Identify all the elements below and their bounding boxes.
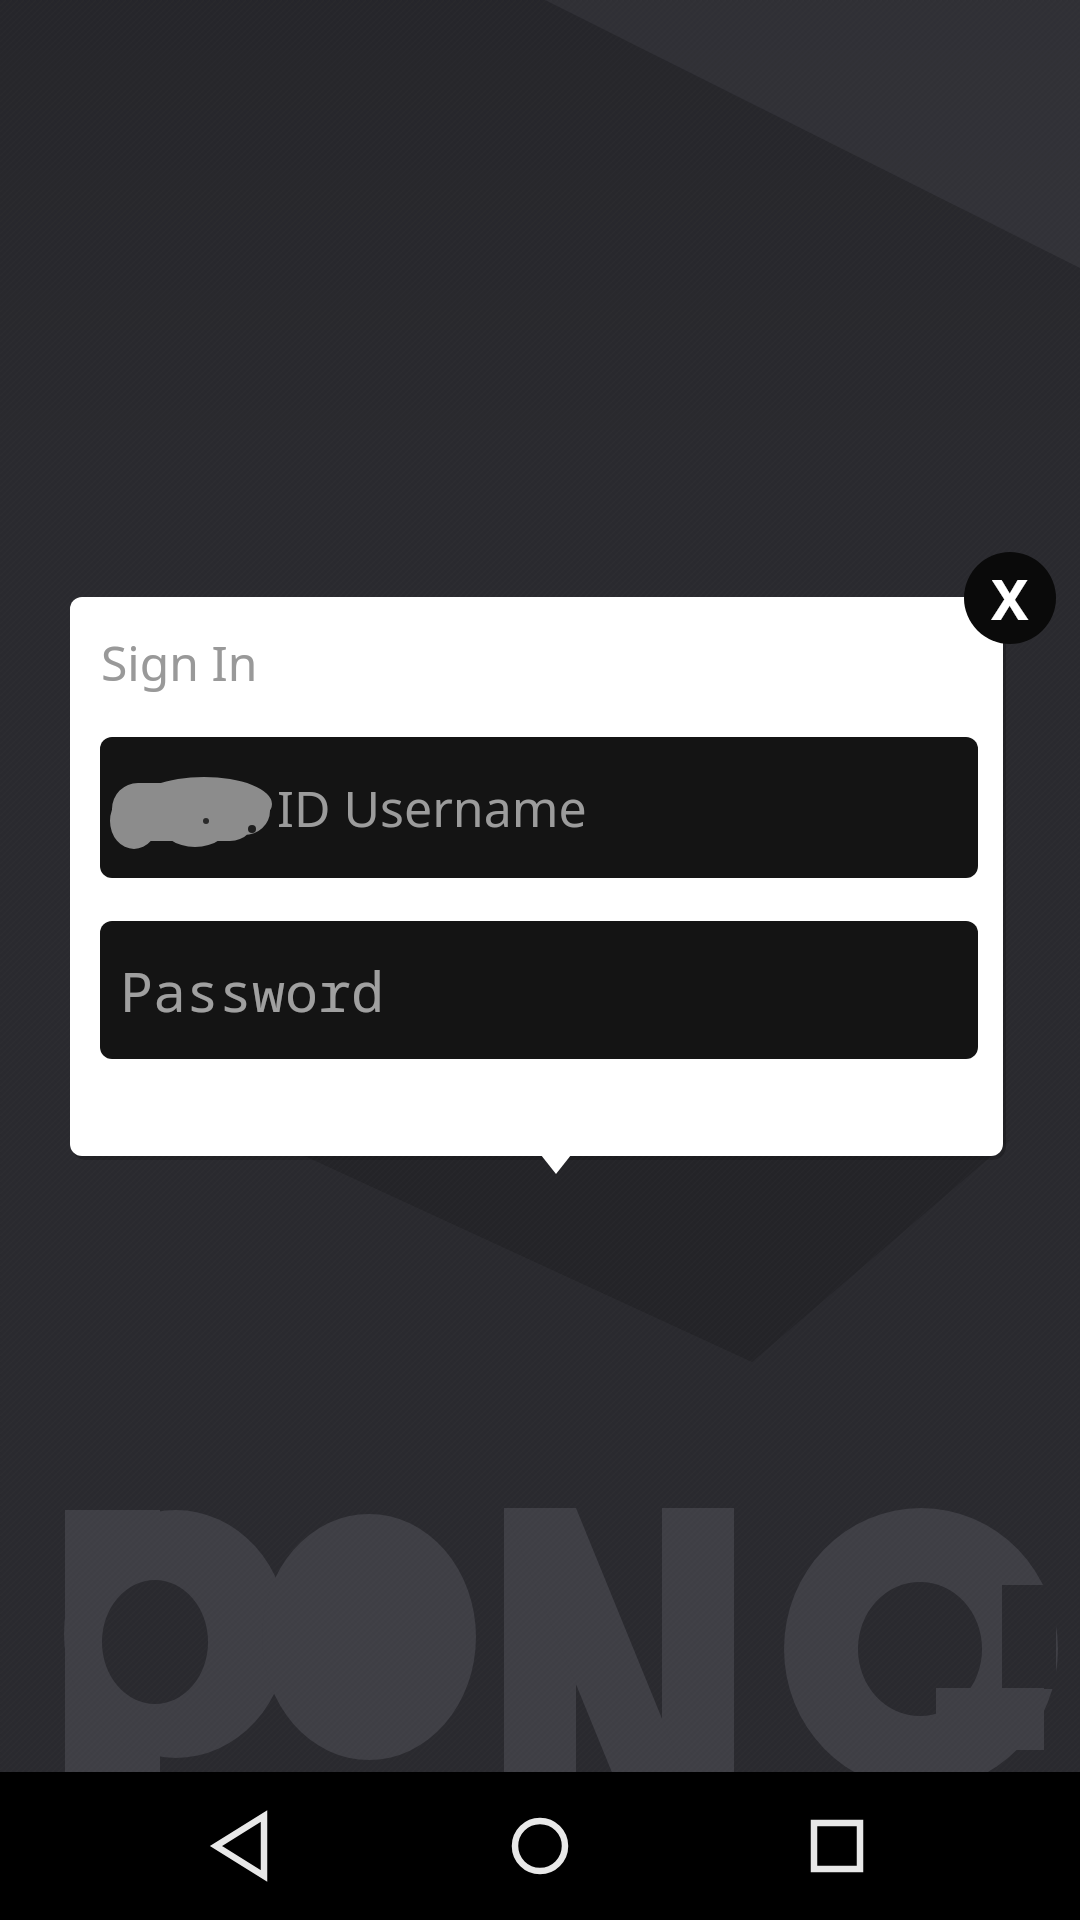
staticText: Sign In [101,630,258,695]
button[interactable] [789,1798,885,1894]
button[interactable] [195,1802,291,1898]
staticText: Password [120,953,385,1028]
button[interactable]: X [964,552,1056,644]
button[interactable]: Password [100,921,978,1059]
button[interactable] [492,1798,588,1894]
staticText: ID Username [277,774,587,842]
button[interactable]: ID Username [100,737,978,878]
staticText: X [991,560,1029,636]
